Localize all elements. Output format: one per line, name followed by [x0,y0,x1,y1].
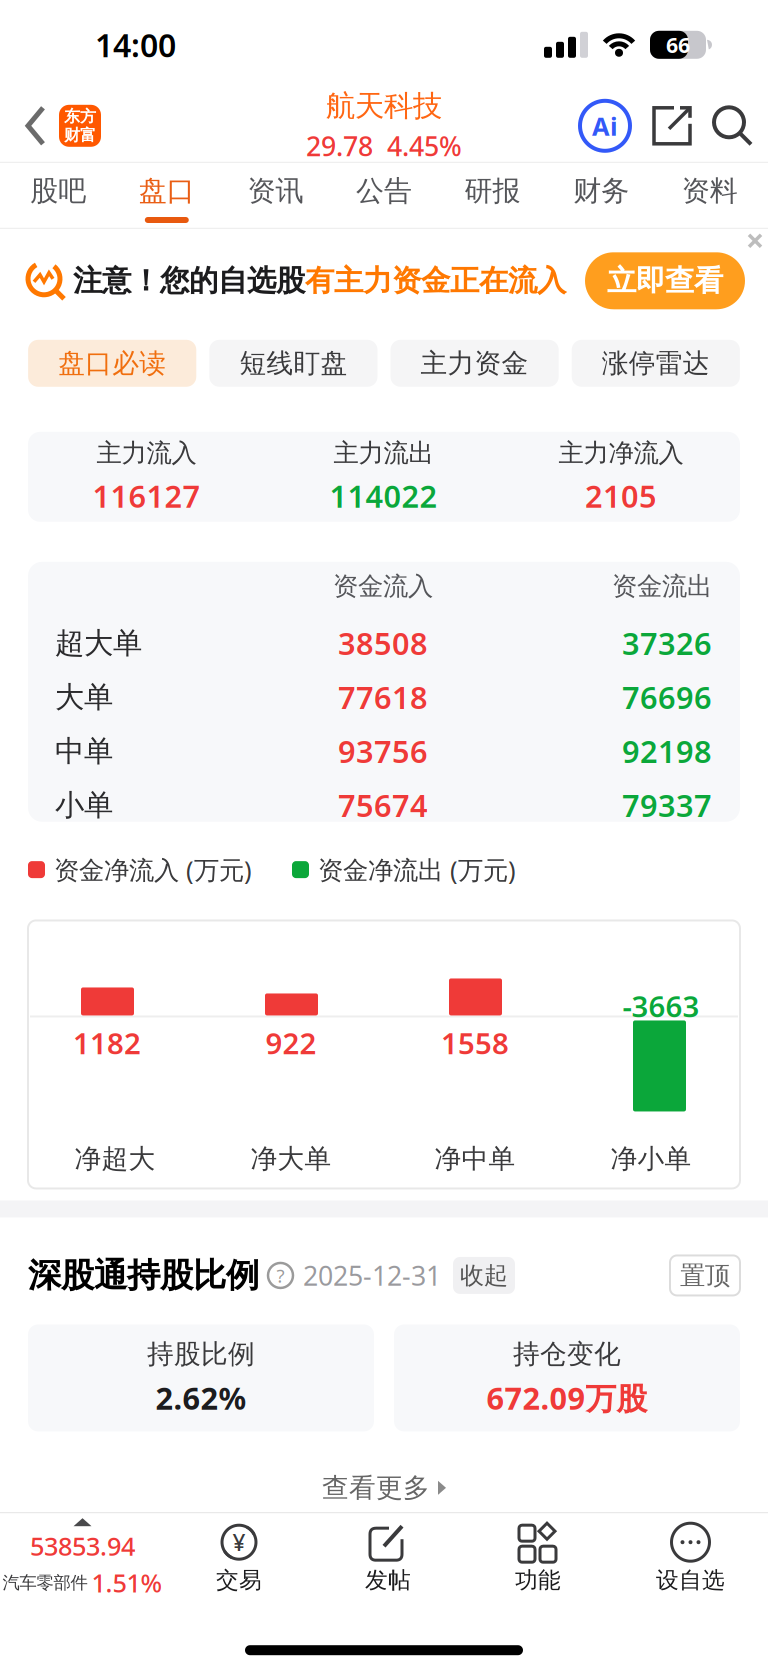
staticText: 大单 [55,679,113,715]
staticText: 2025-12-31 [303,1258,441,1293]
button[interactable]: 立即查看 [585,252,745,309]
staticText: 53853.94 [30,1529,135,1563]
staticText: 资讯 [247,174,303,208]
staticText: 持仓变化 [513,1338,621,1370]
button[interactable]: 功能 [463,1513,613,1594]
button[interactable]: 资讯 [245,162,305,228]
staticText: ? [276,1263,284,1288]
staticText: 净中单 [434,1142,515,1175]
button[interactable]: 资料 [680,162,740,228]
staticText: 14:00 [95,24,176,66]
staticText: 研报 [465,174,521,208]
button[interactable]: 盘口必读 [28,340,196,387]
staticText: 股吧 [30,174,86,208]
staticText: 93756 [338,731,428,771]
staticText: 114022 [329,475,437,516]
staticText: 收起 [460,1261,508,1290]
staticText: 财富 [64,125,96,145]
staticText: 小单 [55,787,113,823]
staticText: 中单 [55,733,113,769]
staticText: 672.09万股 [486,1377,647,1418]
button[interactable]: 股吧 [28,162,88,228]
staticText: 交易 [216,1566,262,1594]
staticText: 盘口 [139,174,195,208]
button[interactable]: Share [630,106,692,146]
staticText: 38508 [338,623,428,663]
staticText: 37326 [622,623,712,663]
staticText: 财务 [573,174,629,208]
staticText: 66 [666,31,690,59]
staticText: ¥ [232,1527,245,1557]
staticText: 主力流出 [333,437,433,468]
staticText: 资金流出 [612,571,712,602]
button[interactable]: 研报 [463,162,523,228]
staticText: 净小单 [610,1142,691,1175]
staticText: 涨停雷达 [602,347,710,380]
staticText: 922 [265,1023,316,1062]
staticText: 航天科技 [326,88,442,124]
button[interactable]: 发帖 [313,1513,463,1594]
button[interactable]: 短线盯盘 [209,340,377,387]
staticText: 发帖 [365,1566,411,1594]
staticText: 功能 [515,1566,561,1594]
staticText: 资金净流出 (万元) [318,853,516,886]
staticText: 盘口必读 [58,347,166,380]
staticText: 深股通持股比例 [28,1255,259,1296]
staticText: 公告 [356,174,412,208]
button[interactable]: 盘口 [137,162,197,228]
staticText: 东方 [64,107,96,126]
staticText: 超大单 [55,625,142,661]
staticText: 资金净流入 (万元) [54,853,252,886]
staticText: 主力净流入 [558,437,683,468]
staticText: 主力流入 [96,437,196,468]
button[interactable]: 涨停雷达 [572,340,740,387]
staticText: 资料 [682,174,738,208]
button[interactable]: 公告 [354,162,414,228]
button[interactable]: Back [0,106,47,146]
button[interactable]: 收起 [453,1257,515,1294]
button[interactable]: 主力资金 [390,340,559,387]
button[interactable]: Ai [580,101,630,151]
staticText: 净大单 [250,1142,331,1175]
staticText: 2.62% [155,1377,246,1418]
staticText: 设自选 [656,1566,725,1594]
staticText: 92198 [622,731,712,771]
button[interactable]: ¥ [165,1513,313,1594]
button[interactable]: Search [692,105,768,146]
staticText: 注意！您的自选股 [73,263,305,299]
button[interactable]: Close [747,229,768,249]
staticText: 主力资金 [421,347,529,380]
staticText: Ai [592,109,618,143]
staticText: 29.78 4.45% [306,128,462,163]
staticText: 1.51% [91,1566,162,1599]
staticText: 置顶 [680,1260,730,1291]
staticText: 立即查看 [607,263,723,299]
staticText: 持股比例 [147,1338,255,1370]
staticText: -3663 [622,986,699,1025]
staticText: 79337 [622,785,712,825]
staticText: 查看更多 [322,1471,430,1504]
staticText: 2105 [585,475,657,516]
staticText: 116127 [92,475,200,516]
staticText: 汽车零部件 [2,1572,87,1593]
button[interactable]: 设自选 [613,1513,768,1594]
button[interactable]: 置顶 [670,1255,740,1295]
staticText: 1182 [73,1023,141,1062]
staticText: 76696 [622,677,712,717]
staticText: 资金流入 [333,571,433,602]
staticText: 1558 [441,1023,509,1062]
button[interactable]: 东方财富 [47,105,101,147]
staticText: 77618 [338,677,428,717]
button[interactable]: 财务 [571,162,631,228]
staticText: 有主力资金正在流入 [305,263,566,299]
button[interactable]: 查看更多 [322,1471,446,1504]
staticText: 75674 [338,785,428,825]
staticText: 净超大 [74,1142,155,1175]
button[interactable]: 53853.94 [0,1513,165,1599]
staticText: 短线盯盘 [239,347,347,380]
